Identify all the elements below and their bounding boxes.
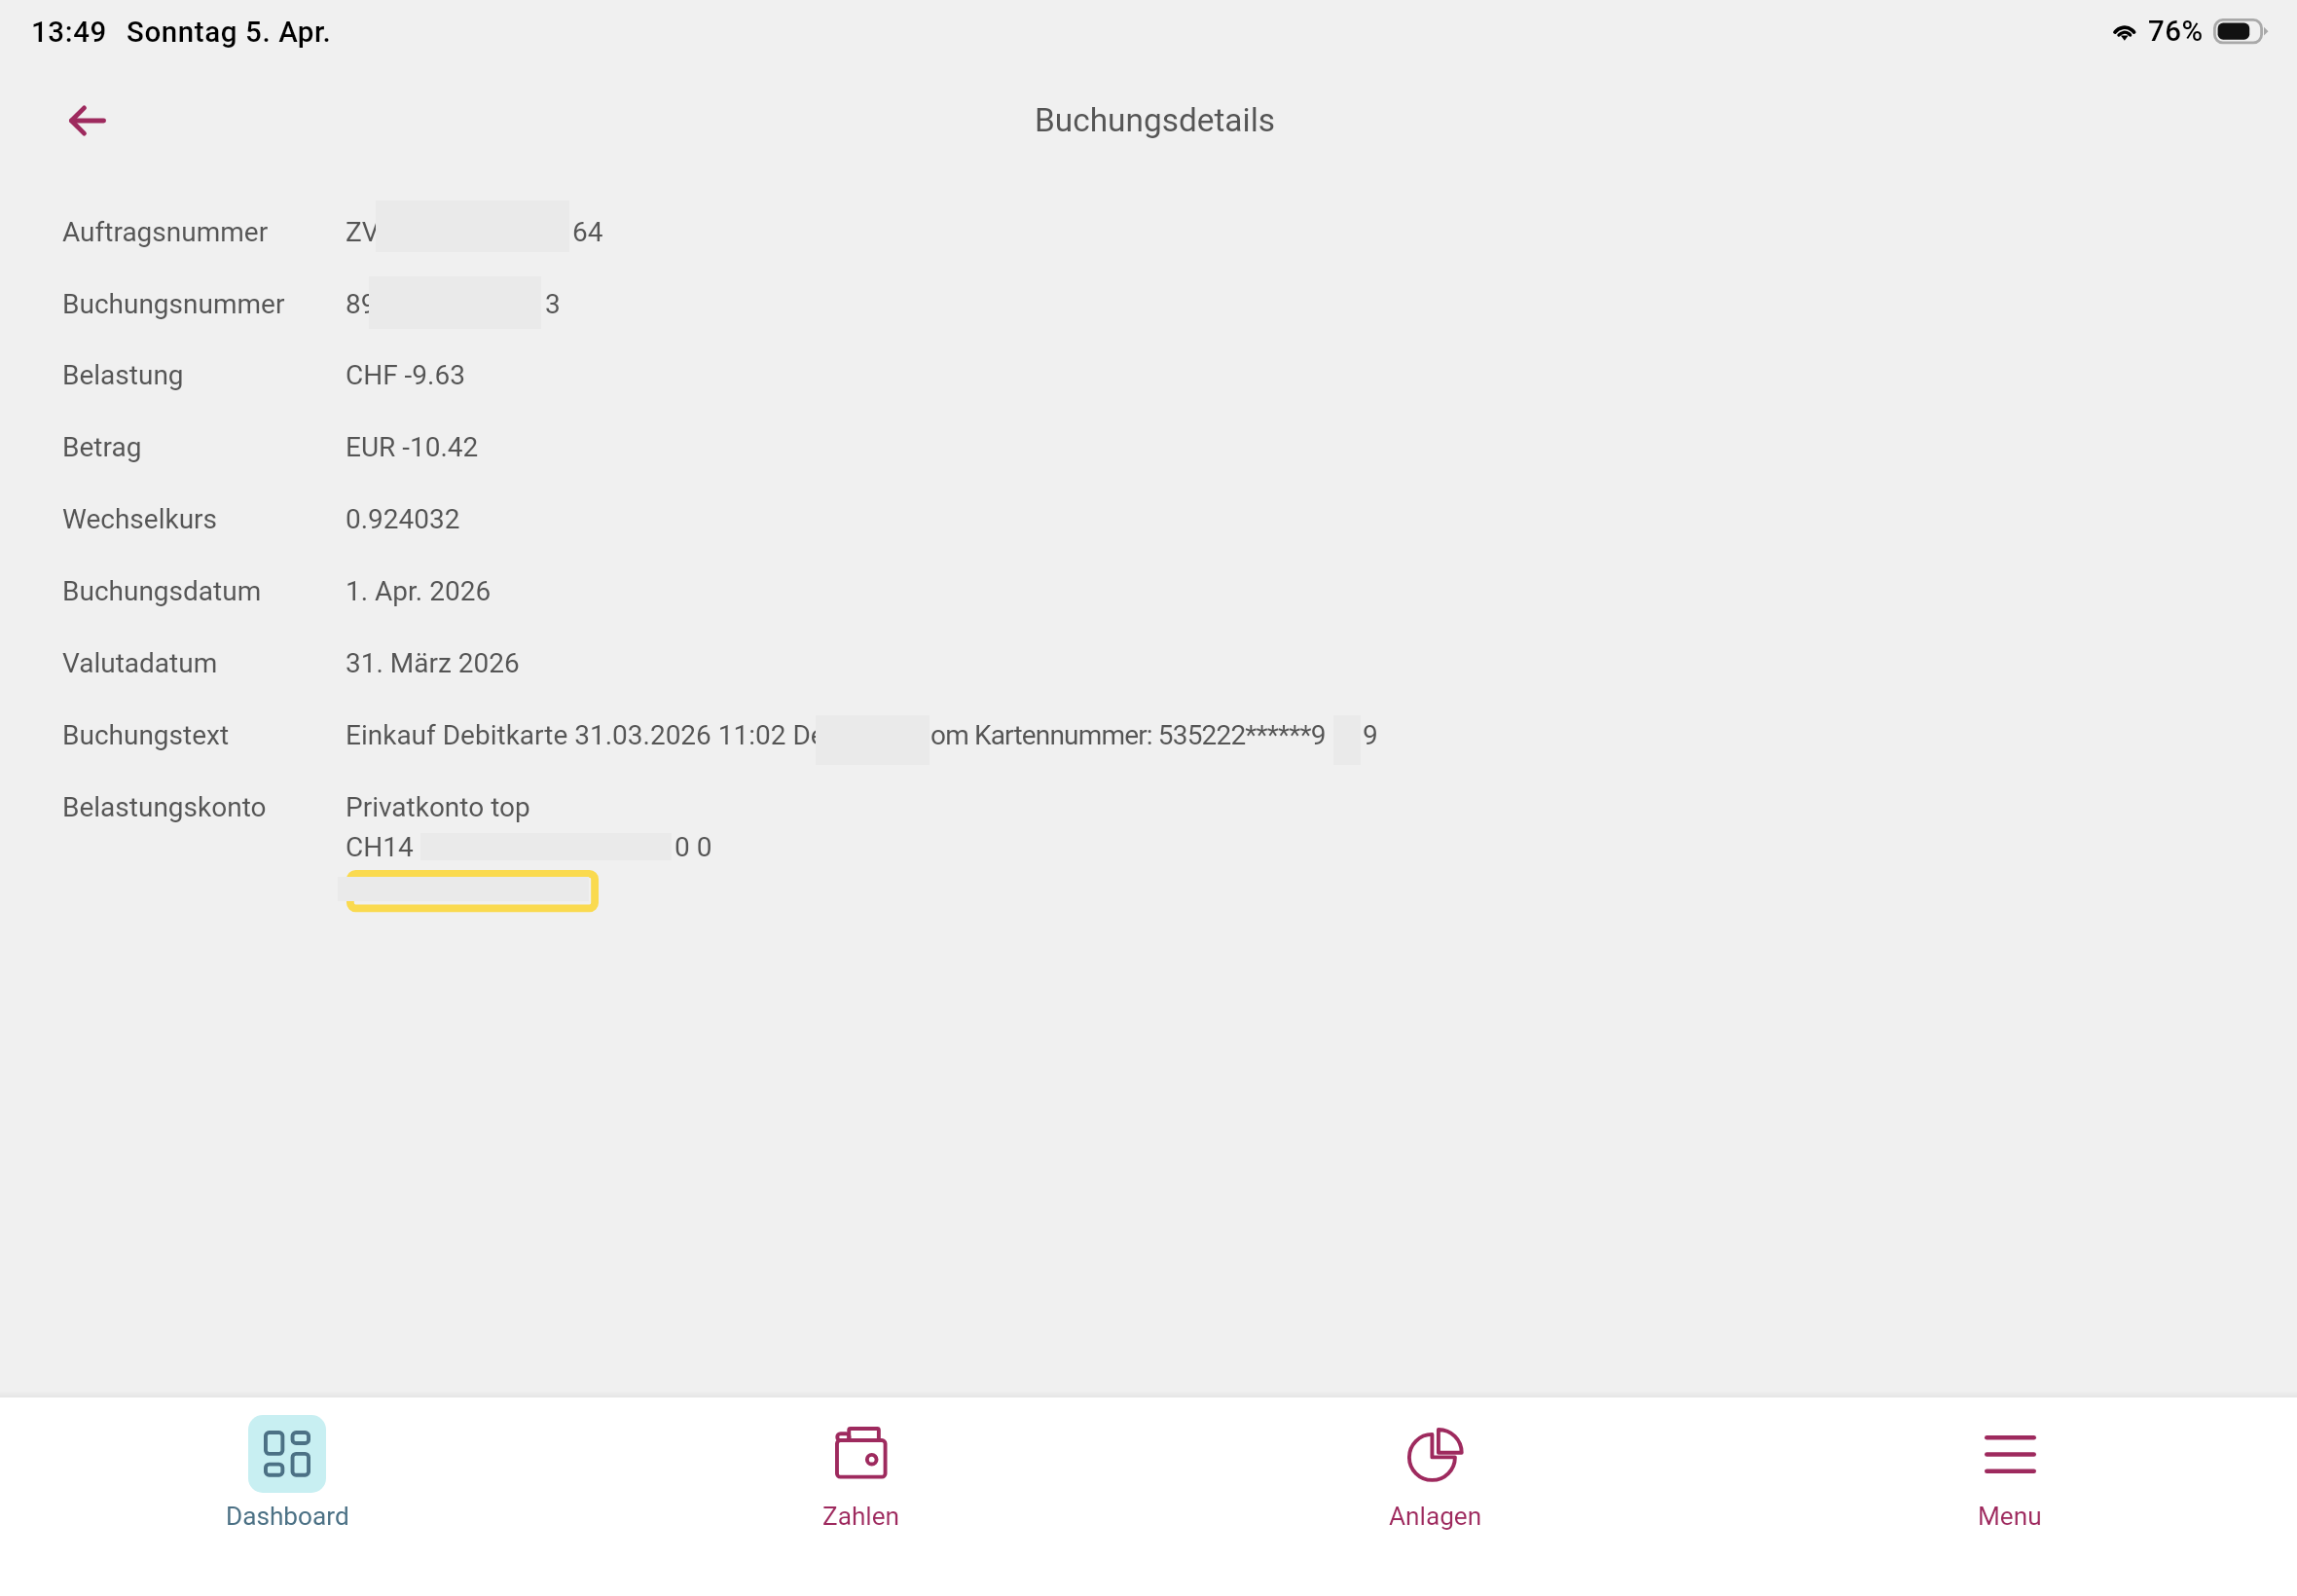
staticText: Buchungsdetails bbox=[1035, 101, 1276, 139]
staticText: 1. Apr. 2026 bbox=[346, 575, 492, 607]
staticText: Belastung bbox=[62, 359, 184, 391]
staticText: 31. März 2026 bbox=[346, 647, 520, 679]
staticText: Auftragsnummer bbox=[62, 216, 269, 248]
button[interactable]: Dashboard bbox=[0, 1397, 574, 1596]
staticText: Wechselkurs bbox=[62, 503, 218, 535]
staticText: Anlagen bbox=[1389, 1502, 1482, 1532]
staticText: 13:49 bbox=[31, 16, 107, 50]
staticText: CH14 bbox=[346, 831, 414, 863]
staticText: 3 bbox=[545, 288, 561, 320]
staticText: 64 bbox=[572, 216, 603, 248]
staticText: Menu bbox=[1978, 1502, 2042, 1532]
staticText: 89 bbox=[346, 288, 377, 320]
staticText: CHF -9.63 bbox=[346, 359, 465, 391]
staticText: Buchungstext bbox=[62, 719, 230, 751]
staticText: Zahlen bbox=[822, 1502, 900, 1532]
staticText: ZV bbox=[346, 216, 380, 248]
staticText: 0.924032 bbox=[346, 503, 460, 535]
staticText: Belastungskonto bbox=[62, 791, 267, 823]
button[interactable]: Zurück bbox=[54, 87, 122, 155]
staticText: Buchungsdatum bbox=[62, 575, 262, 607]
staticText: EUR -10.42 bbox=[346, 431, 479, 463]
staticText: om Kartennummer: 535222******9 bbox=[930, 719, 1326, 751]
staticText: 9 bbox=[1363, 719, 1378, 751]
button[interactable]: Anlagen bbox=[1148, 1397, 1723, 1596]
staticText: 76% bbox=[2148, 15, 2204, 49]
staticText: Betrag bbox=[62, 431, 142, 463]
staticText: Valutadatum bbox=[62, 647, 218, 679]
staticText: Sonntag 5. Apr. bbox=[127, 16, 332, 50]
staticText: Dashboard bbox=[226, 1502, 349, 1532]
staticText: Einkauf Debitkarte 31.03.2026 11:02 De bbox=[346, 719, 825, 751]
button[interactable]: Zahlen bbox=[574, 1397, 1148, 1596]
button[interactable]: Menu bbox=[1723, 1397, 2297, 1596]
staticText: Privatkonto top bbox=[346, 791, 530, 823]
staticText: 0 0 bbox=[675, 831, 712, 863]
staticText: Buchungsnummer bbox=[62, 288, 285, 320]
